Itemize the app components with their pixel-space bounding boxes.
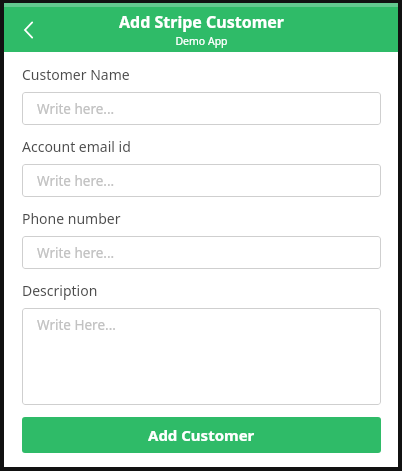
button[interactable]: Back: [10, 11, 48, 49]
staticText: Account email id: [22, 137, 131, 156]
staticText: Write here...: [37, 172, 115, 190]
button[interactable]: Write here...: [22, 236, 381, 269]
button[interactable]: Add Customer: [22, 417, 381, 453]
button[interactable]: Write Here...: [22, 308, 381, 405]
staticText: Write here...: [37, 100, 115, 118]
button[interactable]: Write here...: [22, 92, 381, 125]
staticText: Add Customer: [148, 425, 255, 445]
staticText: Write Here...: [37, 316, 116, 334]
staticText: Phone number: [22, 209, 121, 228]
button[interactable]: Write here...: [22, 164, 381, 197]
staticText: Write here...: [37, 244, 115, 262]
staticText: Demo App: [175, 34, 228, 48]
staticText: Customer Name: [22, 65, 130, 84]
staticText: Add Stripe Customer: [119, 11, 284, 33]
staticText: Description: [22, 281, 98, 300]
